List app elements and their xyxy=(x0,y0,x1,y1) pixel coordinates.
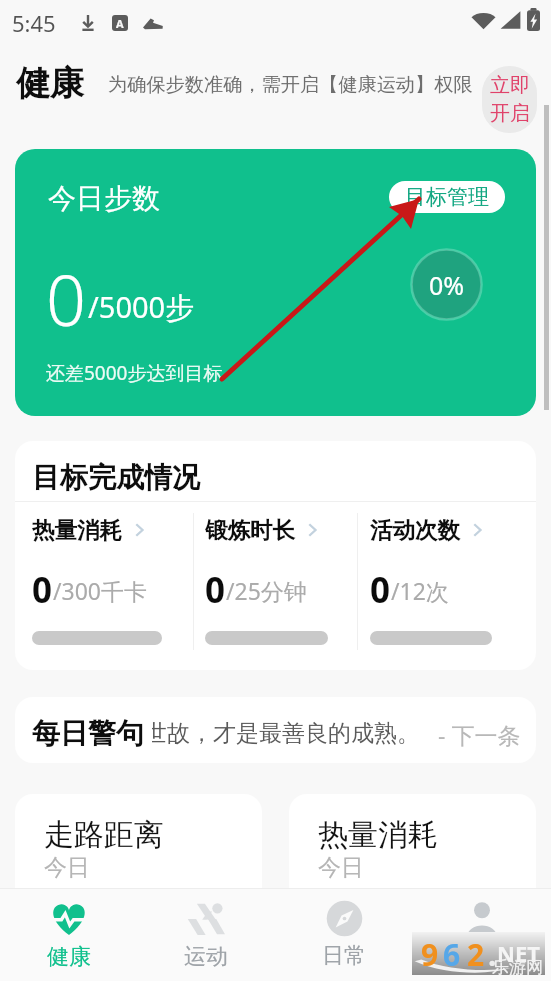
button[interactable]: 健康 xyxy=(0,888,137,981)
button[interactable]: 活动次数 xyxy=(370,511,516,651)
staticText: 今日 xyxy=(44,853,90,882)
staticText: 立即 xyxy=(490,73,530,98)
button[interactable]: 运动 xyxy=(137,888,275,981)
staticText: 每日警句 xyxy=(32,716,144,751)
staticText: . xyxy=(488,934,497,975)
staticText: 开启 xyxy=(490,101,530,126)
staticText: - 下一条 xyxy=(438,719,521,750)
staticText: 健康 xyxy=(16,62,84,105)
button[interactable]: 立即 xyxy=(482,66,537,133)
staticText: 0 xyxy=(46,251,86,346)
button[interactable]: 热量消耗 xyxy=(289,794,536,914)
staticText: 活动次数 xyxy=(370,516,460,544)
staticText: 运动 xyxy=(184,943,228,971)
button[interactable]: 锻炼时长 xyxy=(205,511,352,651)
staticText: 0 xyxy=(32,566,53,614)
staticText: 锻炼时长 xyxy=(205,516,295,544)
staticText: 2 xyxy=(467,934,485,975)
staticText: 乐游网 xyxy=(492,957,543,978)
staticText: /300千卡 xyxy=(53,575,148,606)
staticText: 0 xyxy=(370,566,391,614)
staticText: 我的 xyxy=(460,943,504,971)
staticText: 为确保步数准确，需开启【健康运动】权限 xyxy=(108,73,473,97)
button[interactable]: 每日警句 xyxy=(15,697,536,763)
staticText: 5:45 xyxy=(12,8,56,38)
staticText: /5000步 xyxy=(88,287,195,327)
staticText: 目标完成情况 xyxy=(32,460,200,495)
staticText: 走路距离 xyxy=(44,816,164,854)
button[interactable]: 目标管理 xyxy=(389,181,505,213)
button[interactable]: 我的 xyxy=(413,888,551,981)
staticText: 健康 xyxy=(47,943,91,971)
staticText: 今日步数 xyxy=(48,181,160,216)
staticText: 9 xyxy=(421,934,439,975)
button[interactable]: 日常 xyxy=(275,888,413,981)
button[interactable]: 走路距离 xyxy=(15,794,262,914)
staticText: 热量消耗 xyxy=(318,816,438,854)
staticText: NET xyxy=(497,938,540,968)
staticText: /25分钟 xyxy=(226,575,307,606)
staticText: 今日 xyxy=(318,853,364,882)
staticText: /12次 xyxy=(391,575,449,606)
staticText: 还差5000步达到目标 xyxy=(46,360,223,386)
staticText: 热量消耗 xyxy=(32,516,122,544)
staticText: 世故，才是最善良的成熟。 xyxy=(152,719,420,748)
staticText: 日常 xyxy=(322,942,366,970)
staticText: 0 xyxy=(205,566,226,614)
button[interactable]: 今日步数 xyxy=(15,149,536,416)
staticText: 0% xyxy=(429,268,465,302)
button[interactable]: 热量消耗 xyxy=(32,511,186,651)
staticText: A xyxy=(116,16,124,31)
staticText: 6 xyxy=(443,934,461,975)
staticText: 目标管理 xyxy=(405,184,489,210)
